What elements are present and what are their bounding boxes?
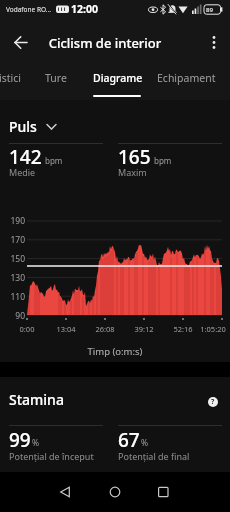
staticText: Stamina xyxy=(9,390,64,409)
button[interactable] xyxy=(200,28,230,58)
staticText: 99 xyxy=(9,427,31,453)
staticText: ? xyxy=(211,397,215,407)
staticText: 12:00 xyxy=(71,2,98,16)
staticText: 150 xyxy=(6,253,25,265)
button[interactable] xyxy=(0,106,80,138)
button[interactable] xyxy=(148,478,178,506)
staticText: Medie xyxy=(9,166,36,178)
button[interactable] xyxy=(100,478,130,506)
staticText: 67 xyxy=(118,427,140,453)
staticText: bpm xyxy=(45,155,63,166)
staticText: 130 xyxy=(6,272,25,284)
button[interactable] xyxy=(38,62,78,100)
staticText: Maxim xyxy=(118,166,147,178)
staticText: 1:05:20 xyxy=(196,324,230,334)
staticText: 52:16 xyxy=(169,324,197,334)
staticText: Ciclism de interior xyxy=(0,34,210,52)
staticText: Diagrame xyxy=(93,71,143,85)
staticText: 39:12 xyxy=(130,324,158,334)
staticText: Timp (o:m:s) xyxy=(0,345,230,358)
staticText: Potențial de final xyxy=(118,450,190,462)
staticText: Ture xyxy=(45,71,67,85)
staticText: bpm xyxy=(154,155,172,166)
staticText: 90 xyxy=(6,310,25,322)
button[interactable] xyxy=(150,62,230,100)
button[interactable]: ? xyxy=(208,397,218,407)
staticText: 190 xyxy=(6,215,25,227)
staticText: 170 xyxy=(6,234,25,246)
staticText: Vodafone RO... xyxy=(6,5,51,14)
staticText: Echipament xyxy=(157,71,216,85)
staticText: Potențial de început xyxy=(9,450,94,462)
staticText: % xyxy=(32,437,40,449)
staticText: 89 xyxy=(206,6,213,14)
staticText: % xyxy=(141,437,149,449)
staticText: 0:00 xyxy=(13,324,41,334)
button[interactable] xyxy=(50,478,80,506)
staticText: 142 xyxy=(9,144,42,170)
staticText: istici xyxy=(0,71,21,85)
button[interactable] xyxy=(6,28,36,58)
button[interactable] xyxy=(88,62,146,100)
button[interactable] xyxy=(0,62,34,100)
staticText: 26:08 xyxy=(91,324,119,334)
staticText: 13:04 xyxy=(52,324,80,334)
staticText: 165 xyxy=(118,144,151,170)
staticText: Puls xyxy=(9,117,37,136)
staticText: 110 xyxy=(6,291,25,303)
